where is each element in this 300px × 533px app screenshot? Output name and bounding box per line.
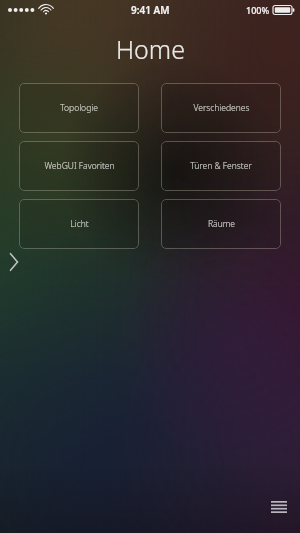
button[interactable]: WebGUI Favoriten [19, 141, 139, 191]
button[interactable]: Menu [268, 499, 290, 515]
staticText: 100% [246, 4, 270, 16]
button[interactable]: Verschiedenes [161, 83, 281, 133]
button[interactable]: Licht [19, 199, 139, 249]
button[interactable]: Türen & Fenster [161, 141, 281, 191]
button[interactable]: Next page [4, 249, 24, 275]
button[interactable]: Räume [161, 199, 281, 249]
staticText: WebGUI Favoriten [44, 160, 115, 172]
staticText: Topologie [60, 102, 98, 114]
staticText: Verschiedenes [193, 102, 250, 114]
staticText: Home [116, 32, 185, 66]
staticText: 9:41 AM [131, 3, 170, 17]
staticText: Räume [208, 218, 235, 230]
staticText: Türen & Fenster [190, 160, 252, 172]
staticText: Licht [70, 218, 89, 230]
button[interactable]: Topologie [19, 83, 139, 133]
